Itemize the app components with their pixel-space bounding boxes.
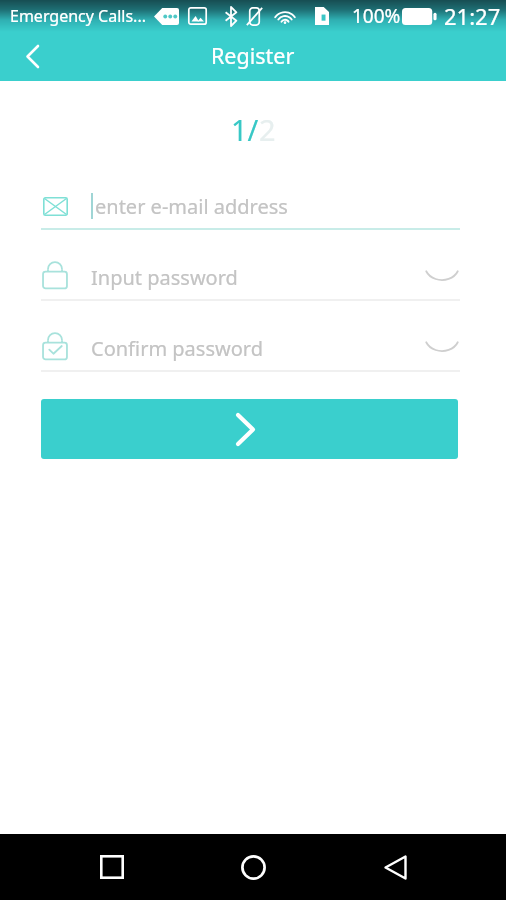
staticText: 2 — [259, 110, 276, 149]
staticText: 1/ — [231, 110, 259, 149]
staticText: Input password — [91, 264, 238, 291]
button[interactable]: Back — [365, 837, 425, 897]
staticText: enter e-mail address — [95, 193, 288, 220]
staticText: Emergency Calls... — [10, 5, 146, 27]
button[interactable]: Show password — [424, 326, 460, 370]
button[interactable]: Home — [223, 837, 283, 897]
button[interactable]: Input password — [41, 255, 460, 299]
button[interactable]: Back — [0, 32, 64, 81]
button[interactable]: Confirm password — [41, 326, 460, 370]
staticText: 21:27 — [444, 1, 501, 31]
button[interactable]: Show password — [424, 255, 460, 299]
staticText: Confirm password — [91, 335, 263, 362]
button[interactable]: Recents — [82, 837, 142, 897]
staticText: Register — [211, 41, 295, 70]
button[interactable]: Next step — [41, 399, 458, 459]
staticText: 100% — [352, 3, 401, 29]
button[interactable]: enter e-mail address — [41, 184, 460, 228]
